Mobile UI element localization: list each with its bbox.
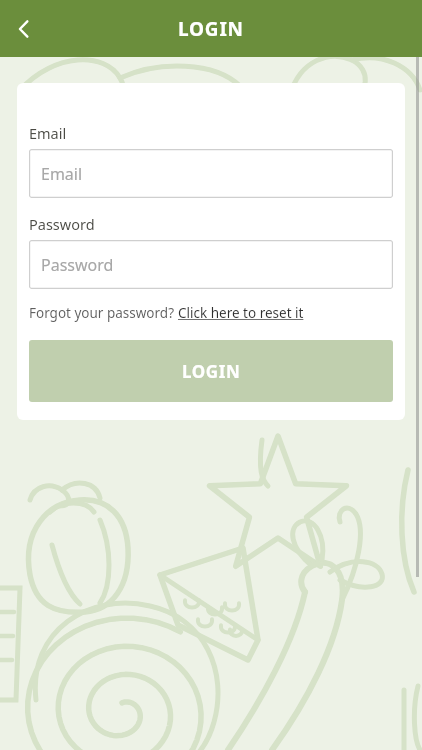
button[interactable]: Back: [0, 5, 48, 53]
staticText: Email: [41, 163, 83, 185]
button[interactable]: Email: [29, 149, 393, 198]
button[interactable]: Click here to reset it: [178, 304, 304, 322]
staticText: LOGIN: [178, 16, 244, 42]
staticText: Forgot your password?: [29, 304, 178, 322]
button[interactable]: LOGIN: [29, 340, 393, 402]
button[interactable]: Password: [29, 240, 393, 289]
staticText: Password: [41, 254, 114, 276]
staticText: Click here to reset it: [178, 304, 304, 322]
staticText: LOGIN: [182, 360, 241, 383]
staticText: Password: [29, 214, 95, 234]
staticText: Email: [29, 123, 67, 143]
